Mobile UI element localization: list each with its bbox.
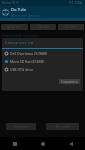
staticText: История	[56, 125, 70, 129]
staticText: Vemo 10 °C	[2, 1, 20, 5]
button[interactable]: Micro SD Kart 874MB	[2, 57, 83, 65]
staticText: ▲ Tab one	[7, 25, 22, 29]
button[interactable]: Home	[29, 137, 57, 150]
button[interactable]: USB OTG drive	[2, 65, 83, 73]
staticText: Загрузки	[14, 125, 28, 129]
button[interactable]: Сохранить	[59, 79, 80, 84]
button[interactable]: Recents	[0, 137, 29, 150]
staticText: Dell Dvprtama 2578MB	[10, 51, 47, 56]
staticText: 9:1 728м	[69, 1, 83, 5]
button[interactable]: ▲ Tab one	[1, 24, 28, 30]
staticText: Tab three	[64, 25, 78, 29]
staticText: Сохранить на	[5, 40, 34, 46]
button[interactable]: История	[46, 123, 79, 130]
staticText: Do Y.de	[11, 7, 27, 13]
staticText: USB OTG drive	[10, 67, 34, 72]
staticText: Micro SD Kart 874MB	[10, 59, 44, 64]
other: Site info	[1, 8, 10, 17]
staticText: Tab two	[38, 25, 49, 29]
button[interactable]: Загрузки	[6, 123, 36, 130]
button[interactable]: Tab three	[58, 24, 84, 30]
staticText: Mes si non ipsum si	[11, 14, 41, 18]
staticText: Сохранить	[61, 80, 78, 84]
button[interactable]: Dell Dvprtama 2578MB	[2, 49, 83, 57]
button[interactable]: Site info	[0, 6, 85, 18]
button[interactable]: Back	[57, 137, 85, 150]
staticText: Downloads manager	[2, 33, 40, 38]
